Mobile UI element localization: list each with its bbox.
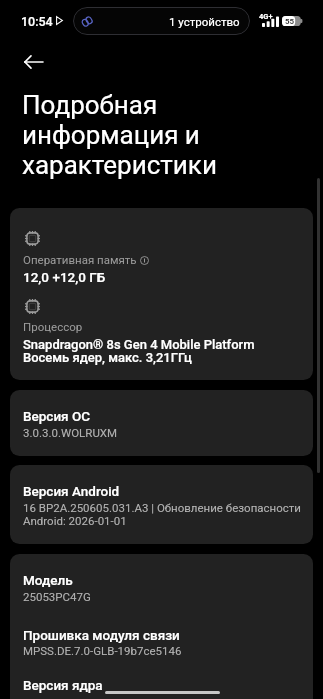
button[interactable] (10, 554, 313, 699)
staticText: Версия ядра (23, 677, 103, 693)
button[interactable] (10, 208, 313, 380)
button[interactable] (10, 390, 313, 456)
staticText: Процессор (23, 320, 83, 333)
staticText: Модель (23, 572, 73, 588)
staticText: Подробная информация и характеристики (22, 90, 232, 180)
button[interactable] (10, 465, 313, 544)
staticText: Оперативная память (23, 253, 137, 266)
staticText: 10:54 (21, 14, 53, 29)
staticText: Android: 2026-01-01 (23, 514, 127, 527)
staticText: 1 устройство (169, 15, 240, 28)
staticText: Snapdragon® 8s Gen 4 Mobile Platform (23, 337, 255, 352)
staticText: 3.0.3.0.WOLRUXM (23, 426, 118, 439)
staticText: Версия Android (23, 483, 120, 499)
staticText: 25053PC47G (23, 590, 91, 603)
staticText: Восемь ядер, макс. 3,21ГГц (23, 350, 192, 365)
staticText: 12,0 +12,0 ГБ (23, 269, 106, 285)
staticText: 16 BP2A.250605.031.A3 | Обновление безоп… (23, 501, 301, 514)
button[interactable]: 1 устройство (73, 7, 250, 35)
staticText: MPSS.DE.7.0-GLB-19b7ce5146 (23, 644, 182, 657)
staticText: Прошивка модуля связи (23, 627, 180, 643)
staticText: 55 (285, 17, 295, 26)
staticText: 4G+ (259, 12, 273, 21)
button[interactable]: Back (10, 38, 55, 83)
staticText: Версия ОС (23, 408, 91, 424)
